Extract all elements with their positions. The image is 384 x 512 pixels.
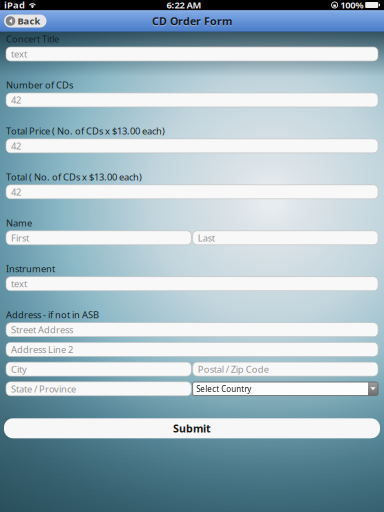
staticText: Number of CDs bbox=[6, 79, 73, 91]
staticText: 42 bbox=[11, 94, 21, 106]
button[interactable]: City bbox=[6, 362, 191, 376]
staticText: First bbox=[11, 232, 29, 244]
staticText: Back bbox=[17, 15, 40, 27]
staticText: Concert Title bbox=[6, 33, 59, 45]
staticText: Last bbox=[198, 232, 215, 244]
button[interactable]: State / Province bbox=[6, 382, 191, 396]
button[interactable]: Submit bbox=[4, 418, 380, 438]
button[interactable]: Back bbox=[4, 14, 46, 27]
button[interactable]: 42 bbox=[6, 185, 378, 199]
staticText: 6:22 AM bbox=[166, 0, 201, 11]
staticText: Submit bbox=[173, 421, 211, 435]
button[interactable]: 42 bbox=[6, 139, 378, 153]
staticText: Address - if not in ASB bbox=[6, 308, 99, 321]
staticText: 42 bbox=[11, 140, 21, 152]
staticText: 100% bbox=[340, 0, 363, 11]
button[interactable]: Select Country bbox=[193, 382, 378, 396]
button[interactable]: Address Line 2 bbox=[6, 342, 378, 356]
staticText: Address Line 2 bbox=[11, 343, 73, 356]
staticText: Name bbox=[6, 217, 32, 229]
staticText: Instrument bbox=[6, 263, 55, 275]
button[interactable]: 42 bbox=[6, 93, 378, 107]
button[interactable]: text bbox=[6, 47, 378, 61]
staticText: 42 bbox=[11, 186, 21, 198]
staticText: text bbox=[11, 278, 27, 290]
staticText: Select Country bbox=[196, 383, 251, 394]
staticText: CD Order Form bbox=[152, 15, 232, 29]
staticText: City bbox=[11, 363, 27, 375]
staticText: Street Address bbox=[11, 323, 73, 336]
staticText: Total ( No. of CDs x $13.00 each) bbox=[6, 171, 142, 183]
staticText: CD Order Form bbox=[152, 14, 232, 28]
staticText: Postal / Zip Code bbox=[198, 363, 269, 375]
staticText: Total Price ( No. of CDs x $13.00 each) bbox=[6, 125, 165, 137]
staticText: State / Province bbox=[11, 383, 76, 395]
button[interactable]: text bbox=[6, 277, 378, 291]
button[interactable]: Last bbox=[193, 231, 378, 245]
staticText: iPad bbox=[4, 0, 25, 11]
staticText: text bbox=[11, 48, 27, 60]
button[interactable]: First bbox=[6, 231, 191, 245]
button[interactable]: Postal / Zip Code bbox=[193, 362, 378, 376]
button[interactable]: Street Address bbox=[6, 323, 378, 337]
